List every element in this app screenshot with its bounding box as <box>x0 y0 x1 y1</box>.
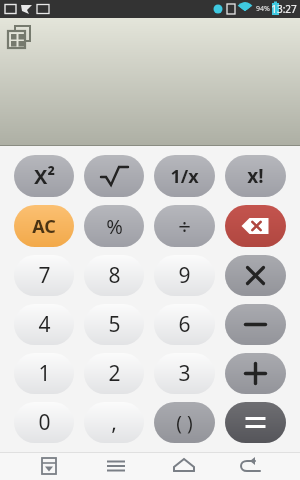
staticText: 1 <box>38 359 51 388</box>
button[interactable]: Multiply <box>225 255 286 296</box>
button[interactable]: X² <box>14 155 74 197</box>
button[interactable]: AC <box>14 205 74 247</box>
button[interactable]: Add <box>225 353 286 394</box>
button[interactable]: Home <box>166 452 202 480</box>
staticText: 9 <box>178 261 191 290</box>
staticText: 5 <box>108 310 121 339</box>
button[interactable]: Recent apps <box>98 452 134 480</box>
staticText: ÷ <box>178 211 191 241</box>
button[interactable]: 7 <box>14 255 74 296</box>
staticText: 7 <box>38 261 51 290</box>
button[interactable]: 1 <box>14 353 74 394</box>
button[interactable]: x! <box>225 155 286 197</box>
button[interactable]: Back <box>233 452 269 480</box>
button[interactable]: Hide keyboard <box>31 452 67 480</box>
button[interactable]: 2 <box>84 353 144 394</box>
button[interactable]: 6 <box>154 304 215 345</box>
staticText: ( ) <box>176 410 193 436</box>
button[interactable]: Square root <box>84 155 144 197</box>
staticText: X² <box>34 163 55 190</box>
button[interactable]: Memory pad <box>4 22 30 48</box>
button[interactable]: 1/x <box>154 155 215 197</box>
staticText: 2 <box>108 359 121 388</box>
button[interactable]: 8 <box>84 255 144 296</box>
button[interactable]: Equals <box>225 402 286 443</box>
button[interactable]: Backspace <box>225 205 286 247</box>
button[interactable]: 0 <box>14 402 74 443</box>
staticText: 3 <box>178 359 191 388</box>
staticText: AC <box>32 214 56 239</box>
button[interactable]: % <box>84 205 144 247</box>
staticText: 94% <box>256 4 270 14</box>
staticText: 13:27 <box>271 2 297 16</box>
staticText: x! <box>247 163 264 189</box>
button[interactable]: ÷ <box>154 205 215 247</box>
button[interactable]: 3 <box>154 353 215 394</box>
button[interactable]: ( ) <box>154 402 215 443</box>
button[interactable]: Subtract <box>225 304 286 345</box>
staticText: % <box>106 213 123 240</box>
button[interactable]: 9 <box>154 255 215 296</box>
staticText: 8 <box>108 261 121 290</box>
staticText: 0 <box>38 408 51 437</box>
button[interactable]: 5 <box>84 304 144 345</box>
staticText: , <box>111 408 117 437</box>
staticText: 4 <box>38 310 51 339</box>
button[interactable]: 4 <box>14 304 74 345</box>
button[interactable]: , <box>84 402 144 443</box>
staticText: 1/x <box>170 164 199 189</box>
staticText: 6 <box>178 310 191 339</box>
